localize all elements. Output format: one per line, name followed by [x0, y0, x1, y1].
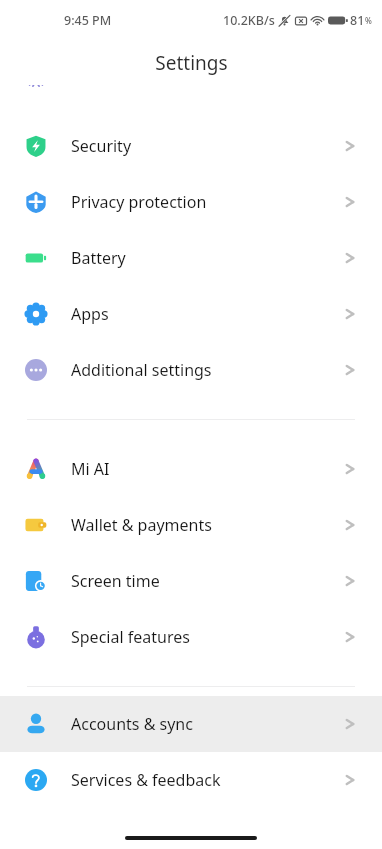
button[interactable]: screen lock: [0, 85, 382, 95]
button[interactable]: Wallet & payments: [0, 497, 382, 553]
other: Wallet & payments: [340, 515, 360, 535]
staticText: Privacy protection: [71, 191, 340, 213]
staticText: 81: [350, 12, 365, 29]
staticText: Wallet & payments: [71, 514, 340, 536]
staticText: Battery: [71, 247, 340, 269]
staticText: Apps: [71, 303, 340, 325]
staticText: Accounts & sync: [71, 713, 340, 735]
other: Security: [340, 136, 360, 156]
button[interactable]: Accounts & sync: [0, 696, 382, 752]
staticText: Security: [71, 135, 340, 157]
other: Mi AI: [340, 459, 360, 479]
button[interactable]: Battery: [0, 230, 382, 286]
other: Privacy protection: [340, 192, 360, 212]
button[interactable]: Additional settings: [0, 342, 382, 398]
staticText: Settings: [155, 50, 228, 76]
staticText: 9:45 PM: [64, 12, 112, 29]
button[interactable]: Services & feedback: [0, 752, 382, 808]
button[interactable]: Privacy protection: [0, 174, 382, 230]
staticText: 10.2KB/s: [223, 12, 275, 29]
staticText: Additional settings: [71, 359, 340, 381]
staticText: Services & feedback: [71, 769, 340, 791]
other: Screen time: [340, 571, 360, 591]
staticText: Mi AI: [71, 458, 340, 480]
other: Accounts & sync: [340, 714, 360, 734]
button[interactable]: Screen time: [0, 553, 382, 609]
button[interactable]: Security: [0, 118, 382, 174]
staticText: Special features: [71, 626, 340, 648]
other: Special features: [340, 627, 360, 647]
button[interactable]: Special features: [0, 609, 382, 665]
other: Battery: [340, 248, 360, 268]
button[interactable]: Apps: [0, 286, 382, 342]
button[interactable]: Mi AI: [0, 441, 382, 497]
staticText: Screen time: [71, 570, 340, 592]
other: Services & feedback: [340, 770, 360, 790]
staticText: %: [365, 15, 372, 26]
other: Additional settings: [340, 360, 360, 380]
other: Apps: [340, 304, 360, 324]
